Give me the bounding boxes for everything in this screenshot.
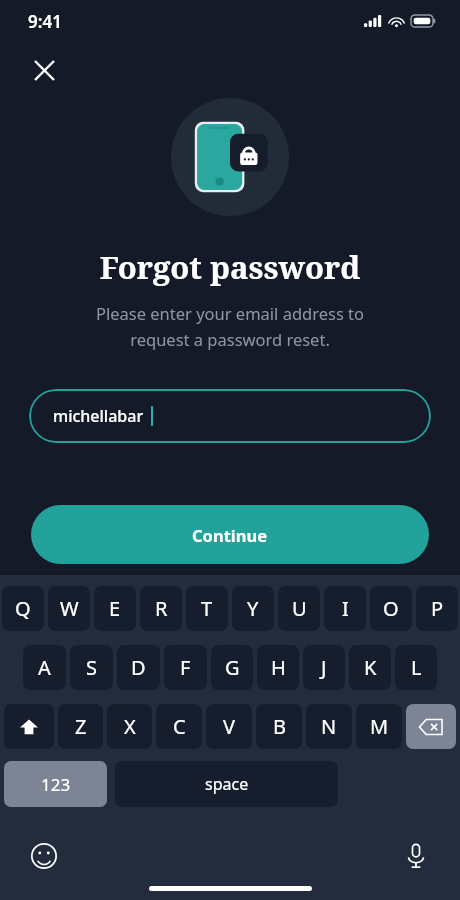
button[interactable]: O [370,586,412,631]
staticText: J [321,654,327,681]
button[interactable]: A [23,645,66,690]
button[interactable]: V [206,704,252,749]
button[interactable]: P [416,586,458,631]
staticText: A [38,654,51,681]
staticText: K [364,654,377,681]
staticText: P [431,595,444,622]
staticText: D [131,654,146,681]
staticText: Forgot password [0,246,460,288]
button[interactable]: E [94,586,136,631]
staticText: I [342,595,349,622]
button[interactable]: Backspace [406,704,456,749]
button[interactable]: Z [58,704,103,749]
staticText: L [411,654,422,681]
button[interactable]: Q [2,586,44,631]
staticText: N [321,713,337,740]
staticText: M [370,713,389,740]
button[interactable]: Y [232,586,274,631]
button[interactable]: X [107,704,152,749]
staticText: Continue [192,524,268,546]
button[interactable]: C [156,704,202,749]
button[interactable]: D [117,645,160,690]
button[interactable]: I [324,586,366,631]
staticText: Q [15,595,31,622]
button[interactable]: G [211,645,253,690]
staticText: W [60,595,79,622]
button[interactable]: W [48,586,90,631]
button[interactable]: R [140,586,182,631]
button[interactable]: S [70,645,113,690]
staticText: U [292,595,307,622]
staticText: S [86,654,97,681]
button[interactable]: K [349,645,391,690]
staticText: R [155,595,168,622]
button[interactable]: U [278,586,320,631]
button[interactable]: 123 [4,761,107,807]
button[interactable]: L [395,645,437,690]
staticText: Please enter your email address to reque… [40,302,420,351]
button[interactable]: Shift [4,704,54,749]
staticText: Y [247,595,259,622]
button[interactable]: Emoji [22,834,66,878]
staticText: F [180,654,191,681]
button[interactable]: Close [22,48,66,92]
staticText: B [273,713,286,740]
staticText: H [271,654,286,681]
staticText: C [173,713,186,740]
button[interactable]: H [257,645,299,690]
button[interactable]: space [115,761,338,807]
staticText: X [124,713,136,740]
staticText: V [223,713,235,740]
button[interactable]: T [186,586,228,631]
button[interactable]: J [303,645,345,690]
button[interactable]: Voice input [394,834,438,878]
button[interactable]: michellabar [29,389,431,443]
staticText: michellabar [53,405,144,427]
staticText: space [205,773,249,795]
button[interactable]: Continue [31,505,429,564]
button[interactable]: N [306,704,352,749]
staticText: T [201,595,213,622]
staticText: O [383,595,399,622]
button[interactable]: F [164,645,207,690]
staticText: 123 [41,773,71,796]
staticText: G [225,654,240,681]
staticText: Z [75,713,87,740]
button[interactable]: M [356,704,402,749]
staticText: 9:41 [28,10,62,33]
staticText: E [109,595,121,622]
button[interactable]: B [256,704,302,749]
